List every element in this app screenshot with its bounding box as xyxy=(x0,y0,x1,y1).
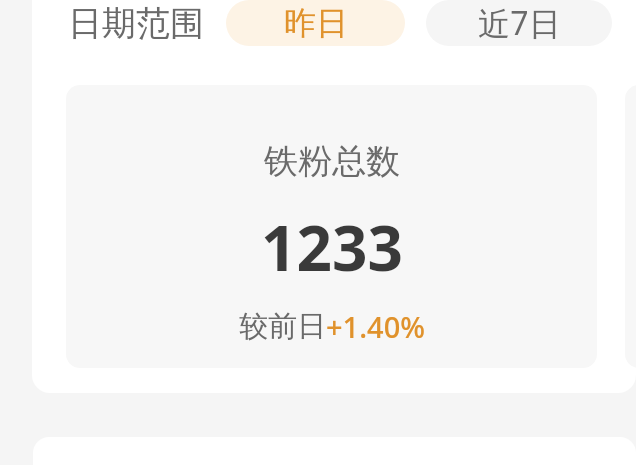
button[interactable]: 近7日 xyxy=(426,0,612,46)
staticText: +1.40% xyxy=(326,307,425,346)
staticText: 较前日 xyxy=(239,308,326,345)
button[interactable]: 昨日 xyxy=(226,0,405,46)
staticText: 近7日 xyxy=(478,1,561,45)
staticText: 昨日 xyxy=(284,3,348,43)
button[interactable]: 铁粉总数 xyxy=(66,85,597,368)
staticText: 日期范围 xyxy=(68,2,204,45)
staticText: 1233 xyxy=(261,205,403,289)
staticText: 铁粉总数 xyxy=(264,140,400,183)
